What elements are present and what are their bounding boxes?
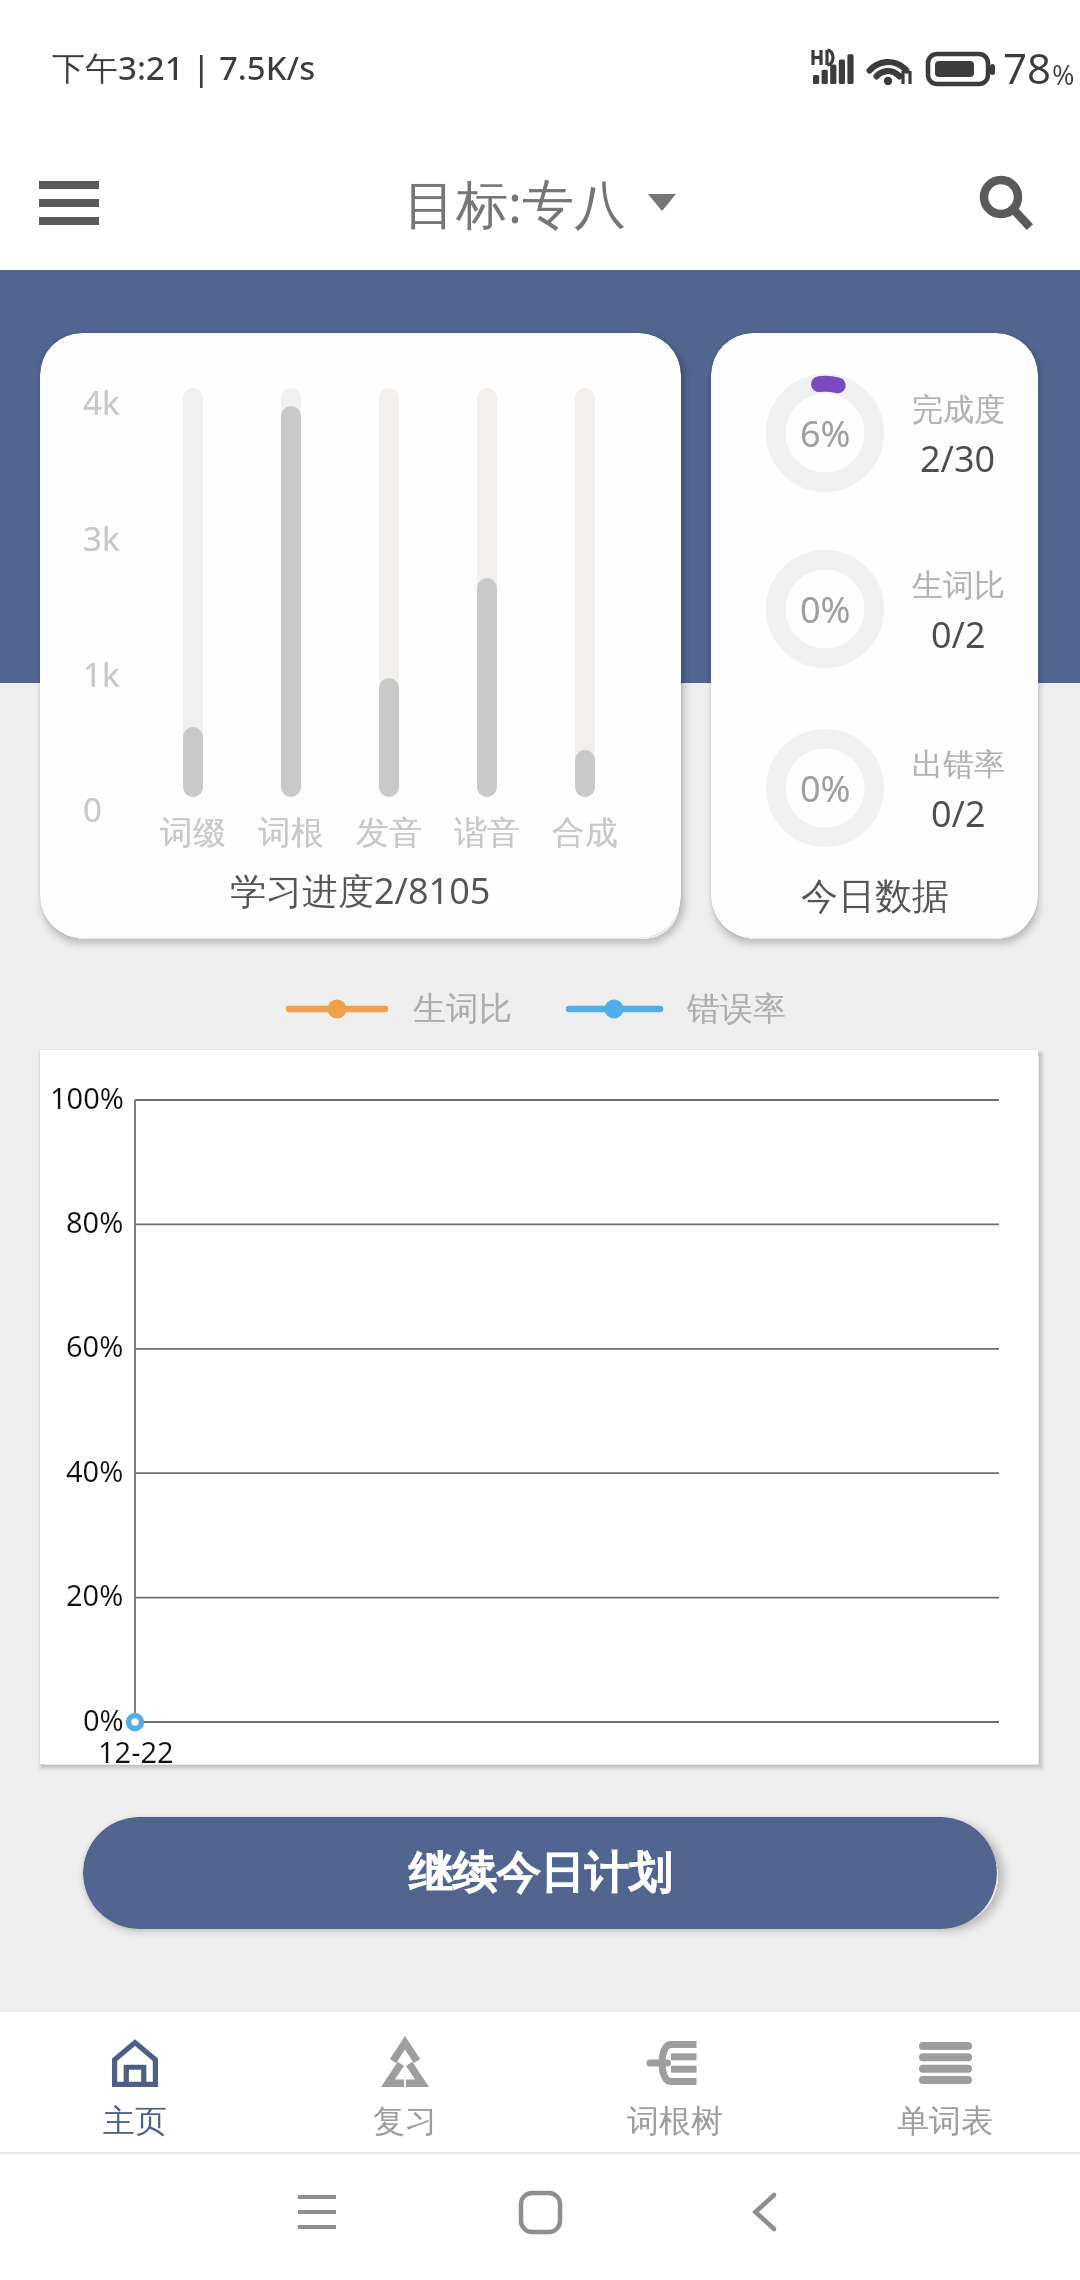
staticText: 12-22: [98, 1732, 174, 1771]
button[interactable]: Home: [492, 2164, 588, 2260]
staticText: 生词比: [413, 988, 512, 1030]
staticText: 词根: [258, 812, 324, 854]
button[interactable]: 单词表: [810, 2012, 1080, 2152]
staticText: 出错率: [912, 745, 1005, 784]
staticText: 0%: [83, 1700, 124, 1739]
staticText: 6%: [800, 409, 851, 458]
button[interactable]: Recents: [269, 2164, 365, 2260]
staticText: 合成: [552, 812, 618, 854]
staticText: 1k: [83, 652, 120, 697]
staticText: 单词表: [897, 2101, 993, 2141]
button[interactable]: 主页: [0, 2012, 270, 2152]
staticText: 词缀: [160, 812, 226, 854]
staticText: 今日数据: [801, 873, 949, 920]
button[interactable]: 6%: [711, 333, 1038, 938]
staticText: 错误率: [687, 988, 786, 1030]
staticText: 继续今日计划: [408, 1846, 672, 1901]
staticText: 发音: [356, 812, 422, 854]
staticText: 完成度: [912, 390, 1005, 429]
staticText: 3k: [83, 516, 120, 561]
button[interactable]: Back: [717, 2164, 813, 2260]
staticText: 词根树: [627, 2101, 723, 2141]
staticText: 100%: [50, 1078, 124, 1117]
staticText: 学习进度2/8105: [230, 866, 491, 915]
button[interactable]: Search: [959, 156, 1053, 250]
staticText: 0: [83, 787, 102, 832]
staticText: 0%: [800, 585, 851, 634]
staticText: 80%: [66, 1202, 124, 1241]
staticText: %: [1052, 56, 1075, 93]
staticText: 20%: [66, 1575, 124, 1614]
staticText: 主页: [103, 2101, 167, 2141]
staticText: 生词比: [912, 566, 1005, 605]
staticText: 下午3:21 | 7.5K/s: [52, 45, 316, 90]
staticText: 复习: [373, 2101, 437, 2141]
button[interactable]: 目标:专八: [392, 157, 688, 248]
staticText: 78: [1003, 39, 1052, 96]
staticText: 40%: [66, 1451, 124, 1490]
staticText: 0/2: [931, 789, 986, 838]
staticText: 目标:专八: [404, 167, 626, 238]
staticText: 4k: [83, 380, 120, 425]
button[interactable]: 复习: [270, 2012, 540, 2152]
button[interactable]: 4k: [40, 333, 681, 938]
button[interactable]: Menu: [22, 156, 116, 250]
staticText: 60%: [66, 1326, 124, 1365]
button[interactable]: 继续今日计划: [83, 1817, 997, 1929]
staticText: 2/30: [920, 434, 996, 483]
button[interactable]: 词根树: [540, 2012, 810, 2152]
staticText: 0%: [800, 764, 851, 813]
staticText: 0/2: [931, 610, 986, 659]
staticText: 谐音: [454, 812, 520, 854]
